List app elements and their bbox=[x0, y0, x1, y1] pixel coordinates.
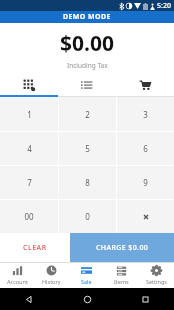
button[interactable]: Sale bbox=[69, 262, 104, 288]
staticText: Account bbox=[7, 278, 28, 285]
staticText: DEMO MODE bbox=[63, 12, 111, 22]
button[interactable]: CHARGE $0.00 bbox=[70, 233, 174, 262]
staticText: History bbox=[42, 278, 61, 285]
button[interactable]: CLEAR bbox=[0, 233, 70, 262]
other: Keypad bbox=[23, 79, 35, 91]
staticText: 00 bbox=[24, 211, 34, 222]
button[interactable]: 3 bbox=[117, 97, 174, 131]
staticText: Items bbox=[114, 278, 129, 285]
staticText: 7 bbox=[27, 177, 32, 188]
button[interactable]: 4 bbox=[0, 132, 58, 165]
button[interactable]: 5 bbox=[59, 132, 116, 165]
staticText: CLEAR bbox=[23, 243, 47, 253]
other: Home bbox=[83, 295, 92, 304]
button[interactable]: 9 bbox=[117, 166, 174, 199]
button[interactable]: 8 bbox=[59, 166, 116, 199]
staticText: 1 bbox=[27, 109, 32, 120]
staticText: 6 bbox=[143, 143, 148, 154]
button[interactable]: 7 bbox=[0, 166, 58, 199]
other: Backspace bbox=[142, 213, 150, 221]
staticText: CHARGE $0.00 bbox=[96, 243, 149, 253]
staticText: 9 bbox=[143, 177, 148, 188]
button[interactable]: 6 bbox=[117, 132, 174, 165]
button[interactable]: 0 bbox=[59, 200, 116, 233]
button[interactable]: Keypad bbox=[0, 75, 58, 95]
button[interactable]: Backspace bbox=[117, 200, 174, 233]
staticText: $0.00 bbox=[60, 29, 114, 58]
other: List bbox=[81, 79, 93, 91]
button[interactable]: 2 bbox=[59, 97, 116, 131]
staticText: 8 bbox=[85, 177, 90, 188]
button[interactable]: Items bbox=[104, 262, 139, 288]
staticText: Settings bbox=[146, 278, 167, 285]
button[interactable]: History bbox=[34, 262, 69, 288]
other: Cart bbox=[139, 79, 151, 91]
button[interactable]: List bbox=[58, 75, 116, 95]
button[interactable]: Account bbox=[0, 262, 34, 288]
other: Recents bbox=[141, 295, 150, 304]
button[interactable]: 1 bbox=[0, 97, 58, 131]
staticText: Sale bbox=[81, 278, 92, 285]
staticText: 5 bbox=[85, 143, 90, 154]
button[interactable]: 00 bbox=[0, 200, 58, 233]
staticText: 3 bbox=[143, 109, 148, 120]
staticText: 5:20 bbox=[157, 1, 171, 11]
other: Back bbox=[24, 295, 33, 304]
staticText: 0 bbox=[85, 211, 90, 222]
staticText: 4 bbox=[27, 143, 32, 154]
staticText: 2 bbox=[85, 109, 90, 120]
button[interactable]: Cart bbox=[116, 75, 174, 95]
button[interactable]: Settings bbox=[139, 262, 174, 288]
staticText: Including Tax bbox=[67, 61, 108, 70]
